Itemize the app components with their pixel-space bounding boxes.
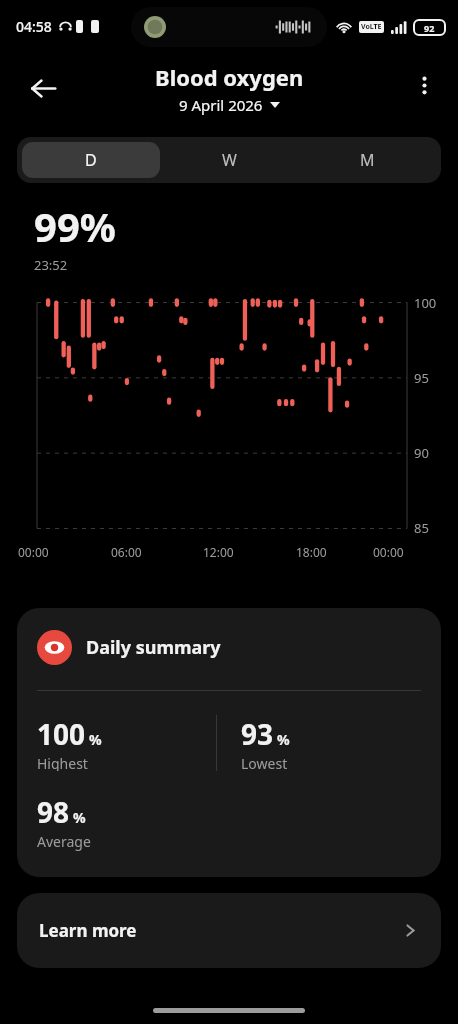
- staticText: %: [277, 730, 290, 749]
- button[interactable]: Daily summary: [17, 608, 441, 877]
- button[interactable]: M: [298, 142, 436, 178]
- staticText: 85: [414, 519, 429, 537]
- staticText: 98: [37, 793, 70, 831]
- button[interactable]: 9 April 2026: [179, 95, 280, 115]
- staticText: 100: [414, 294, 437, 312]
- staticText: %: [73, 808, 86, 827]
- staticText: 92: [424, 22, 435, 34]
- staticText: 99%: [34, 199, 116, 253]
- staticText: 95: [414, 369, 429, 387]
- button[interactable]: Learn more: [17, 893, 441, 968]
- staticText: 9 April 2026: [179, 95, 263, 115]
- staticText: VoLTE: [361, 22, 382, 32]
- staticText: Daily summary: [86, 635, 221, 660]
- button[interactable]: More options: [402, 63, 446, 107]
- staticText: Blood oxygen: [155, 62, 304, 92]
- button[interactable]: Back: [20, 65, 66, 111]
- staticText: 12:00: [203, 544, 234, 560]
- staticText: %: [89, 730, 102, 749]
- staticText: 93: [241, 715, 274, 753]
- staticText: 00:00: [18, 544, 49, 560]
- staticText: Average: [37, 832, 91, 851]
- staticText: 00:00: [373, 544, 404, 560]
- staticText: 18:00: [296, 544, 327, 560]
- staticText: 23:52: [34, 256, 68, 274]
- staticText: Highest: [37, 754, 88, 771]
- staticText: Lowest: [241, 754, 288, 771]
- button[interactable]: D: [22, 142, 160, 178]
- staticText: W: [222, 149, 237, 171]
- staticText: 04:58: [16, 17, 52, 36]
- staticText: 06:00: [111, 544, 142, 560]
- staticText: 90: [414, 444, 429, 462]
- staticText: D: [85, 149, 97, 171]
- staticText: Learn more: [39, 919, 137, 942]
- staticText: M: [360, 149, 375, 171]
- button[interactable]: W: [160, 142, 298, 178]
- staticText: 100: [37, 715, 86, 753]
